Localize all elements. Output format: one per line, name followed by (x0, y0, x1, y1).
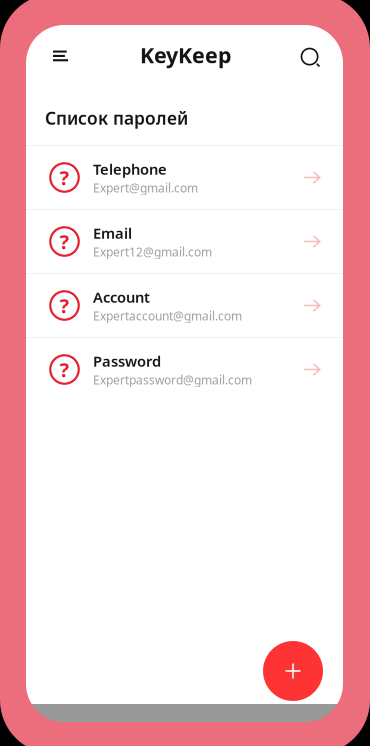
button[interactable]: ? (26, 274, 343, 337)
button[interactable]: Menu (40, 38, 80, 78)
button[interactable]: Search (291, 38, 331, 78)
button[interactable]: ? (26, 210, 343, 273)
staticText: ? (59, 356, 69, 383)
staticText: Expertpassword@gmail.com (93, 372, 252, 388)
staticText: Password (93, 351, 161, 371)
staticText: Expert12@gmail.com (93, 244, 212, 260)
button[interactable]: Add password (263, 641, 323, 701)
staticText: ? (59, 228, 69, 255)
button[interactable]: ? (26, 338, 343, 401)
staticText: Expertaccount@gmail.com (93, 308, 242, 324)
staticText: Expert@gmail.com (93, 180, 198, 196)
staticText: ? (59, 164, 69, 191)
staticText: KeyKeep (140, 41, 231, 69)
staticText: ? (59, 292, 69, 319)
staticText: Список паролей (45, 106, 188, 129)
staticText: Telephone (93, 159, 167, 179)
staticText: Email (93, 223, 132, 243)
button[interactable]: ? (26, 146, 343, 209)
staticText: Account (93, 287, 150, 307)
